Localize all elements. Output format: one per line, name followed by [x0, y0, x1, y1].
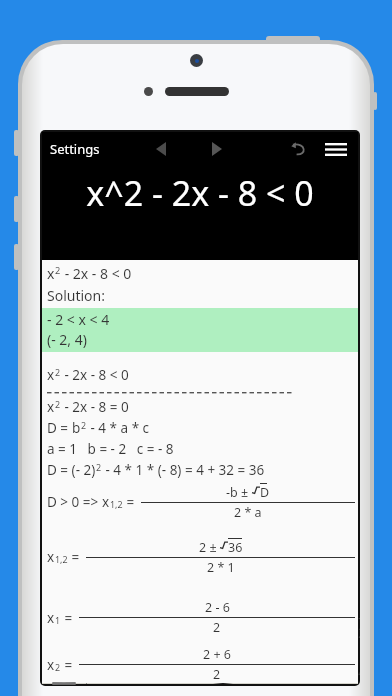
staticText: 2: [96, 461, 102, 473]
button[interactable]: Previous: [146, 135, 176, 163]
button[interactable]: Menu: [320, 135, 352, 163]
staticText: x: [47, 398, 55, 416]
staticText: 2: [55, 264, 61, 277]
staticText: D: [260, 484, 270, 501]
button[interactable]: Undo: [284, 135, 314, 163]
staticText: =: [61, 656, 76, 674]
staticText: 2 * a: [234, 504, 262, 521]
staticText: Solution:: [47, 286, 105, 305]
button[interactable]: Next: [202, 135, 232, 163]
button[interactable]: Send email: [42, 683, 86, 684]
staticText: -b ±: [226, 484, 252, 501]
staticText: 2 - 6: [205, 599, 230, 616]
staticText: 2: [81, 419, 87, 431]
staticText: 2: [55, 398, 61, 410]
staticText: D =: [47, 419, 72, 437]
staticText: - 2x - 8 = 0: [61, 398, 129, 416]
staticText: (- 2, 4): [47, 330, 87, 349]
staticText: 36: [228, 539, 243, 556]
button[interactable]: Expand: [87, 683, 358, 684]
staticText: - 2x - 8 < 0: [61, 366, 129, 384]
button[interactable]: Settings: [48, 136, 102, 162]
staticText: x: [47, 609, 55, 627]
staticText: x^2 - 2x - 8 < 0: [42, 170, 358, 216]
staticText: 2: [213, 619, 221, 636]
staticText: 2: [55, 661, 61, 673]
staticText: a = 1 b = - 2 c = - 8: [47, 440, 174, 458]
staticText: 2 + 6: [203, 646, 231, 663]
staticText: x: [47, 264, 55, 283]
staticText: - 4 * 1 * (- 8) = 4 + 32 = 36: [102, 461, 265, 479]
staticText: - 4 * a * c: [87, 419, 150, 437]
staticText: x: [47, 548, 55, 566]
staticText: 1,2: [110, 498, 123, 510]
staticText: - 2 < x < 4: [47, 310, 110, 329]
staticText: 2: [213, 666, 221, 683]
staticText: D > 0 =>: [47, 493, 102, 511]
staticText: 1: [55, 614, 61, 626]
staticText: 1,2: [55, 553, 68, 565]
staticText: x: [102, 493, 110, 511]
staticText: 2 ±: [199, 539, 220, 556]
staticText: =: [68, 548, 83, 566]
staticText: 2 * 1: [207, 559, 235, 576]
staticText: - 2x - 8 < 0: [61, 264, 132, 283]
staticText: =: [123, 493, 138, 511]
staticText: x: [47, 366, 55, 384]
staticText: b: [72, 419, 81, 437]
staticText: 2: [55, 366, 61, 378]
staticText: =: [61, 609, 76, 627]
staticText: D = (- 2): [47, 461, 96, 479]
staticText: x: [47, 656, 55, 674]
